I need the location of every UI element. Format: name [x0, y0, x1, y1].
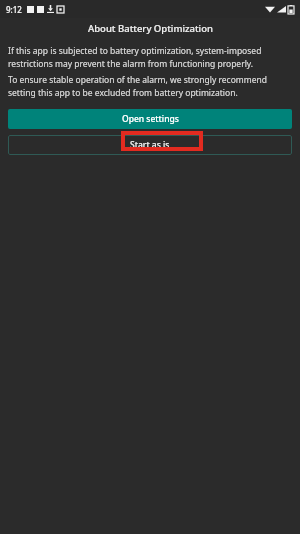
staticText: Open settings	[122, 113, 179, 125]
staticText: 9:12	[6, 4, 22, 15]
staticText: To ensure stable operation of the alarm,…	[8, 74, 290, 98]
button[interactable]: Open settings	[8, 109, 292, 129]
staticText: If this app is subjected to battery opti…	[8, 45, 290, 69]
button[interactable]: Start as is	[8, 135, 292, 155]
staticText: About Battery Optimization	[88, 22, 213, 35]
staticText: Start as is	[130, 139, 170, 151]
